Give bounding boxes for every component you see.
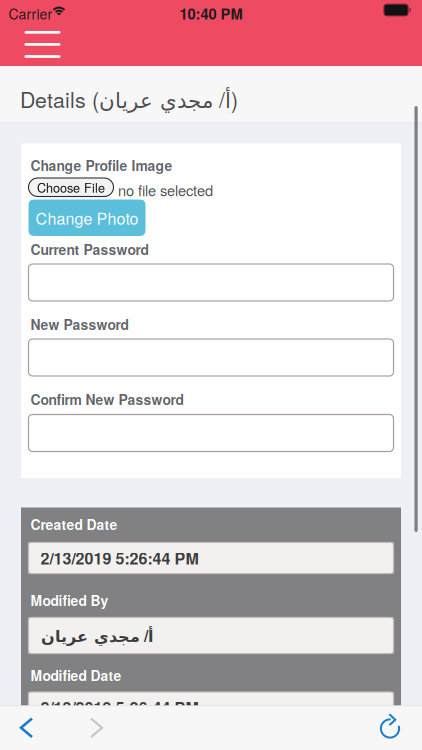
- staticText: 2/13/2019 5:26:44 PM: [40, 696, 198, 719]
- staticText: 10:40 PM: [179, 3, 242, 24]
- staticText: Change Photo: [35, 206, 138, 229]
- button[interactable]: Choose File: [28, 178, 113, 196]
- staticText: Modified Date: [30, 665, 121, 685]
- staticText: Choose File: [37, 178, 105, 196]
- staticText: 2/13/2019 5:26:44 PM: [40, 546, 198, 569]
- staticText: أ/ مجدي عريان: [40, 624, 152, 647]
- staticText: Details (أ/ مجدي عريان): [20, 83, 238, 114]
- staticText: Current Password: [30, 239, 148, 259]
- staticText: Modified By: [30, 590, 108, 610]
- staticText: Carrier: [8, 3, 52, 23]
- staticText: no file selected: [118, 179, 213, 200]
- button[interactable]: Reload: [367, 703, 413, 747]
- staticText: Confirm New Password: [30, 389, 183, 409]
- staticText: Created Date: [30, 514, 117, 534]
- button[interactable]: Forward: [78, 705, 115, 750]
- button[interactable]: Menu: [0, 20, 74, 67]
- staticText: New Password: [30, 314, 128, 334]
- button[interactable]: Change Photo: [28, 199, 145, 236]
- staticText: Change Profile Image: [30, 155, 172, 175]
- button[interactable]: Back: [8, 705, 45, 750]
